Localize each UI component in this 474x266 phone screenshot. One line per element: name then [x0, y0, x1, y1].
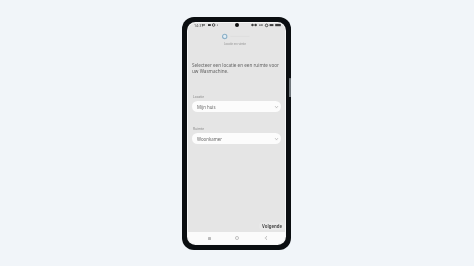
staticText: Ruimte [193, 126, 205, 130]
staticText: Locatie en ruimte [224, 42, 247, 46]
button[interactable]: Volgende [259, 222, 285, 230]
button[interactable]: Mijn huis [192, 101, 281, 112]
button[interactable]: Woonkamer [192, 133, 281, 144]
staticText: 14:31 [194, 23, 204, 28]
staticText: Selecteer een locatie en een ruimte voor… [192, 62, 280, 74]
button[interactable]: Home [226, 232, 248, 244]
staticText: Woonkamer [197, 136, 222, 142]
button[interactable]: Recents [198, 232, 220, 244]
staticText: Volgende [262, 223, 283, 229]
staticText: Mijn huis [197, 104, 216, 110]
button[interactable]: Back [255, 232, 277, 244]
staticText: Locatie [193, 94, 205, 98]
